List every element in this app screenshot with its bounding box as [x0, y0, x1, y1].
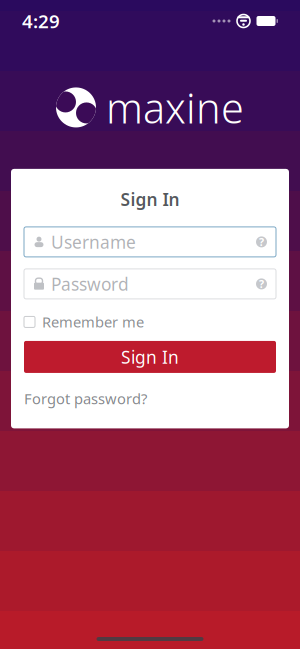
staticText: Forgot password? [24, 389, 147, 408]
staticText: ? [259, 235, 264, 249]
staticText: ? [259, 277, 264, 291]
staticText: Sign In [121, 345, 179, 368]
staticText: Password [51, 272, 129, 295]
staticText: 4:29 [22, 9, 60, 33]
staticText: maxine [106, 80, 244, 135]
staticText: Sign In [120, 188, 179, 211]
staticText: Remember me [42, 312, 144, 332]
button[interactable]: Forgot password? [24, 389, 276, 408]
button[interactable]: Remember me [24, 313, 276, 331]
staticText: Username [51, 230, 136, 253]
button[interactable]: Sign In [24, 341, 276, 373]
